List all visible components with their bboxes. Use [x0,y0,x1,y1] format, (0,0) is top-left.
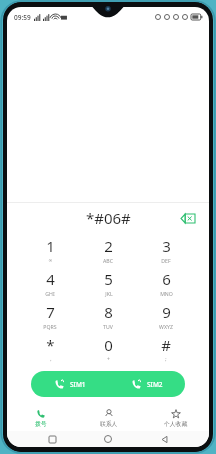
staticText: 拨号 [35,420,47,427]
staticText: PQRS [43,323,57,330]
staticText: 1 [46,236,55,256]
staticText: + [107,356,110,363]
button[interactable]: SIM2 [108,371,185,397]
staticText: WXYZ [159,323,173,330]
button[interactable]: 4 [21,266,79,299]
staticText: SIM1 [70,380,86,389]
staticText: 0 [104,335,113,355]
staticText: TUV [103,323,113,330]
staticText: 3 [162,236,171,256]
button[interactable]: 6 [137,266,195,299]
staticText: 2 [104,236,113,256]
staticText: ; [165,356,167,363]
button[interactable]: 个人收藏 [142,405,209,431]
button[interactable]: Home [97,431,119,447]
button[interactable]: 8 [79,299,137,332]
button[interactable]: * [21,332,79,365]
staticText: ABC [103,257,113,264]
staticText: SIM2 [147,380,163,389]
staticText: , [50,356,52,363]
staticText: 5 [104,269,113,289]
staticText: 4 [46,269,55,289]
button[interactable]: 2 [79,233,137,266]
button[interactable]: 0 [79,332,137,365]
button[interactable]: 联系人 [75,405,142,431]
staticText: 09:59 [14,13,31,22]
button[interactable]: 1 [21,233,79,266]
button[interactable]: 9 [137,299,195,332]
button[interactable]: 3 [137,233,195,266]
button[interactable]: 拨号 [7,405,75,431]
staticText: *#06# [86,208,131,228]
button[interactable]: Recents [41,431,63,447]
button[interactable]: # [137,332,195,365]
staticText: 6 [162,269,171,289]
button[interactable]: Back [153,431,175,447]
button[interactable]: 5 [79,266,137,299]
staticText: JKL [105,290,113,297]
staticText: DEF [161,257,171,264]
staticText: 联系人 [100,420,118,427]
staticText: 9 [162,302,171,322]
staticText: MNO [160,290,173,297]
staticText: # [161,335,171,355]
button[interactable]: Backspace [177,209,199,227]
staticText: ∞ [48,257,53,263]
staticText: * [46,335,55,355]
staticText: 8 [104,302,113,322]
staticText: GHI [45,290,55,297]
button[interactable]: 7 [21,299,79,332]
staticText: 个人收藏 [164,420,188,427]
button[interactable]: SIM1 [31,371,108,397]
staticText: 7 [46,302,55,322]
